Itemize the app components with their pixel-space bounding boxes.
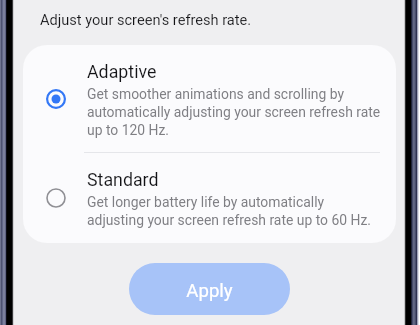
staticText: Adaptive bbox=[87, 61, 157, 82]
staticText: Adjust your screen's refresh rate. bbox=[40, 11, 252, 28]
button[interactable]: Adaptive selected bbox=[23, 45, 396, 152]
staticText: Get longer battery life by automatically… bbox=[87, 194, 382, 229]
staticText: Standard bbox=[87, 169, 159, 190]
button[interactable]: Apply bbox=[129, 263, 290, 315]
staticText: Apply bbox=[186, 280, 233, 302]
button[interactable]: Standard option bbox=[23, 153, 396, 243]
staticText: Get smoother animations and scrolling by… bbox=[87, 86, 382, 139]
other: Standard option bbox=[42, 184, 70, 212]
other: Adaptive selected bbox=[42, 85, 70, 113]
